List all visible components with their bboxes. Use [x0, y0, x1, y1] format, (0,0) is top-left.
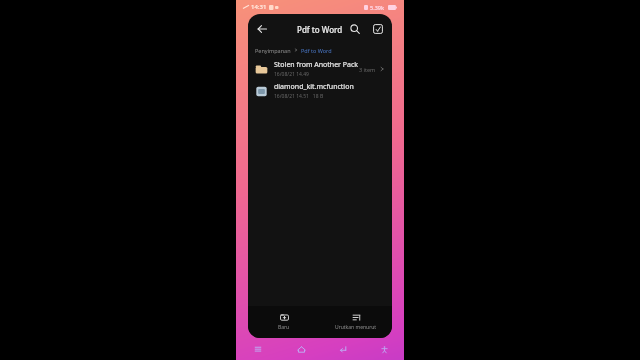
button[interactable]: Accessibility [378, 343, 390, 355]
button[interactable]: Recents [250, 341, 266, 357]
staticText: Penyimpanan [255, 47, 291, 54]
staticText: Stolen from Another Pack [274, 60, 359, 70]
button[interactable]: Home [293, 341, 309, 357]
button[interactable]: Search [345, 19, 365, 39]
staticText: Pdf to Word [297, 24, 343, 35]
button[interactable]: Penyimpanan [255, 47, 291, 54]
staticText: 3 item [359, 66, 376, 73]
staticText: 16/08/21 14.49 [274, 71, 309, 78]
button[interactable]: Back [252, 19, 272, 39]
staticText: 14:31 [251, 3, 267, 11]
staticText: Urutkan menurut [335, 324, 377, 331]
staticText: Baru [278, 324, 290, 331]
button[interactable]: Pdf to Word [301, 47, 332, 54]
staticText: 16/08/21 14.51 18 B [274, 93, 324, 100]
button[interactable]: Back [335, 341, 351, 357]
staticText: 5.39k [370, 4, 385, 11]
button[interactable]: Select items [368, 19, 388, 39]
staticText: diamond_kit.mcfunction [274, 82, 354, 92]
button[interactable]: Urutkan menurut [320, 306, 392, 338]
staticText: Pdf to Word [301, 47, 332, 54]
button[interactable]: diamond_kit.mcfunction [248, 80, 392, 102]
button[interactable]: Stolen from Another Pack [248, 58, 392, 80]
button[interactable]: Baru [248, 306, 320, 338]
